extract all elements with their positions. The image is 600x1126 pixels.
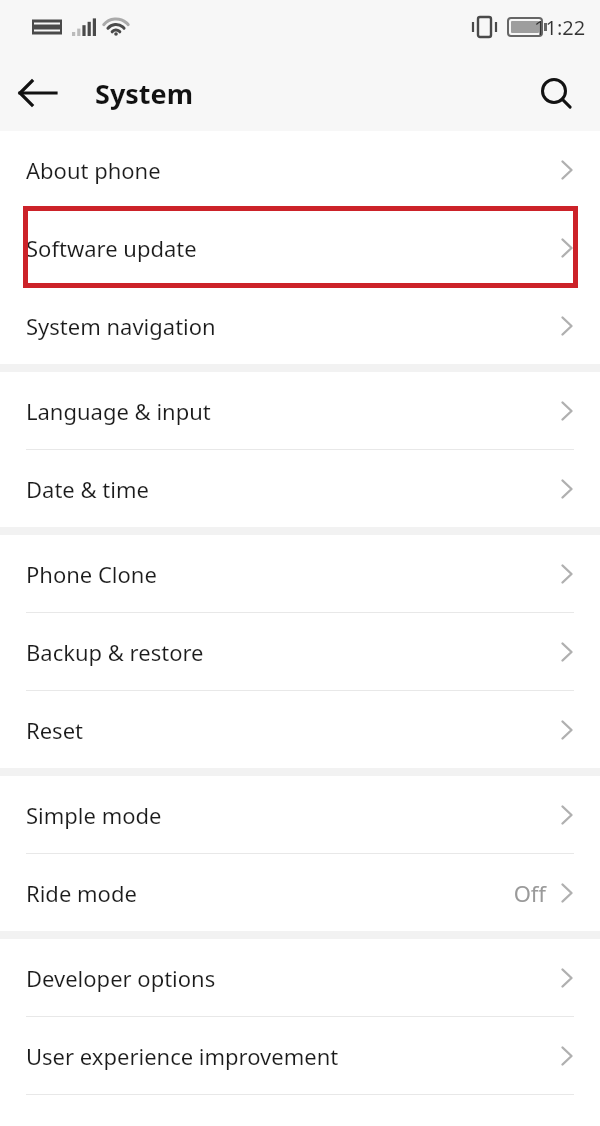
staticText: Phone Clone — [26, 559, 556, 589]
staticText: Off — [513, 878, 546, 908]
staticText: Simple mode — [26, 800, 556, 830]
staticText: Developer options — [26, 963, 556, 993]
button[interactable]: Developer options — [0, 939, 600, 1016]
button[interactable]: System navigation — [0, 287, 600, 364]
button[interactable]: Ride mode — [0, 854, 600, 931]
staticText: User experience improvement — [26, 1041, 556, 1071]
staticText: Backup & restore — [26, 637, 556, 667]
staticText: Ride mode — [26, 878, 513, 908]
staticText: Language & input — [26, 396, 556, 426]
button[interactable]: Date & time — [0, 450, 600, 527]
button[interactable]: Language & input — [0, 372, 600, 449]
staticText: Software update — [26, 233, 556, 263]
button[interactable]: Reset — [0, 691, 600, 768]
staticText: System navigation — [26, 311, 556, 341]
button[interactable]: User experience improvement — [0, 1017, 600, 1094]
button[interactable]: Phone Clone — [0, 535, 600, 612]
staticText: Date & time — [26, 474, 556, 504]
button[interactable]: Software update — [0, 209, 600, 286]
staticText: Reset — [26, 715, 556, 745]
button[interactable]: Back — [8, 63, 68, 123]
button[interactable]: Simple mode — [0, 776, 600, 853]
staticText: System — [95, 75, 194, 112]
staticText: About phone — [26, 155, 556, 185]
button[interactable]: Search — [528, 65, 584, 121]
button[interactable]: About phone — [0, 131, 600, 208]
staticText: 11:22 — [534, 14, 586, 41]
button[interactable]: Backup & restore — [0, 613, 600, 690]
